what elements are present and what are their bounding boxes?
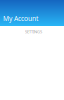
staticText: SETTINGS [25, 29, 42, 34]
staticText: My Account [3, 14, 38, 23]
